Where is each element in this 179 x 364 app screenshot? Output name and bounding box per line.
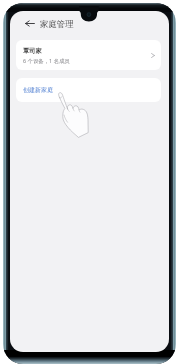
button[interactable]: 覃司家 [16, 40, 161, 70]
button[interactable]: 创建新家庭 [16, 78, 161, 102]
staticText: 家庭管理 [40, 19, 74, 30]
button[interactable]: Back [21, 15, 38, 32]
staticText: 6 个设备，1 名成员 [23, 57, 70, 64]
staticText: 覃司家 [23, 47, 42, 55]
staticText: 创建新家庭 [23, 86, 53, 94]
